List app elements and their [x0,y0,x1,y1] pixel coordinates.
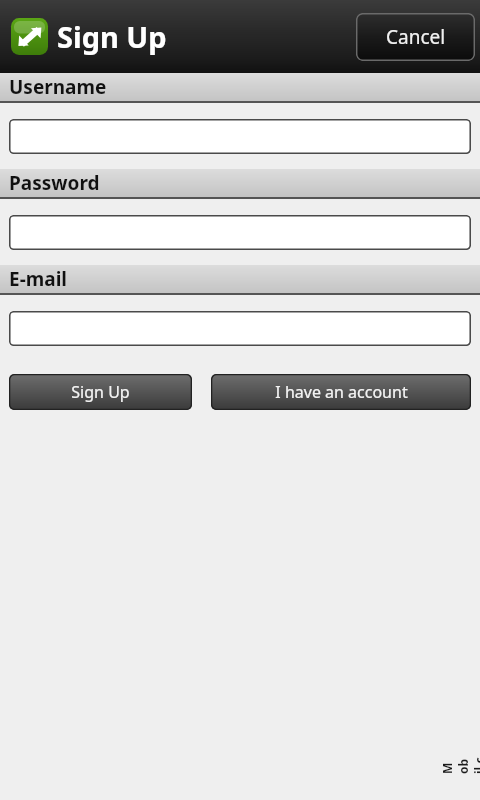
staticText: I have an account [275,381,408,403]
staticText: Cancel [386,24,446,50]
staticText: Password [9,170,100,196]
staticText: Sign Up [57,17,167,56]
other: App logo [11,18,48,55]
button[interactable]: Cancel [356,13,475,61]
staticText: Username [9,74,107,100]
button[interactable]: Sign Up [9,374,192,410]
button[interactable]: I have an account [211,374,471,410]
button[interactable] [9,119,471,154]
staticText: Sign Up [71,381,130,403]
staticText: Mobil.cz [439,756,480,774]
button[interactable] [9,215,471,250]
staticText: E-mail [9,266,67,292]
button[interactable] [9,311,471,346]
